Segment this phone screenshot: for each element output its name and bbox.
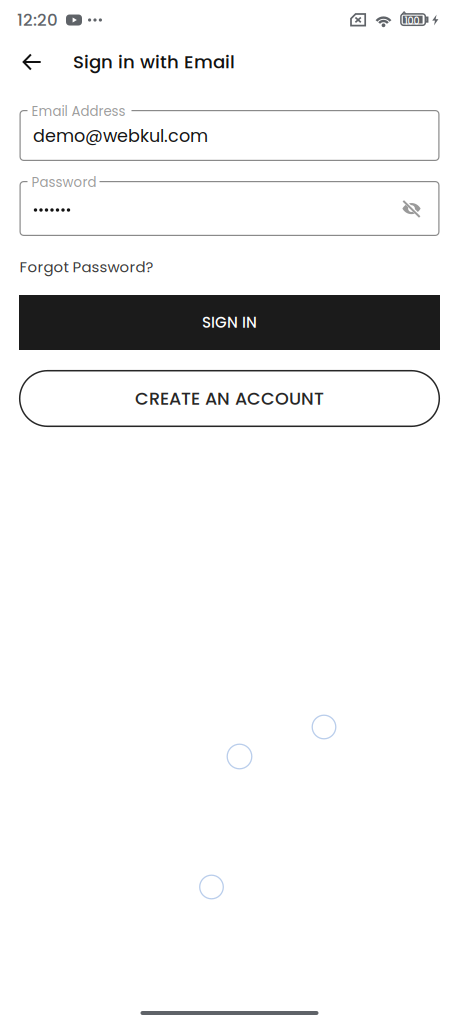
staticText: demo@webkul.com <box>33 123 208 148</box>
button[interactable]: Back <box>9 39 55 85</box>
staticText: 12:20 <box>17 8 58 32</box>
staticText: Email Address <box>31 102 125 121</box>
staticText: Password <box>31 173 96 192</box>
button[interactable]: CREATE AN ACCOUNT <box>19 370 440 427</box>
staticText: CREATE AN ACCOUNT <box>135 386 324 411</box>
staticText: SIGN IN <box>202 312 257 333</box>
button[interactable]: Forgot Password? <box>19 252 153 282</box>
staticText: Forgot Password? <box>19 256 153 277</box>
staticText: Sign in with Email <box>73 49 235 75</box>
staticText: 100 <box>404 14 419 28</box>
button[interactable]: Show password <box>389 186 433 230</box>
button[interactable]: SIGN IN <box>19 295 440 350</box>
